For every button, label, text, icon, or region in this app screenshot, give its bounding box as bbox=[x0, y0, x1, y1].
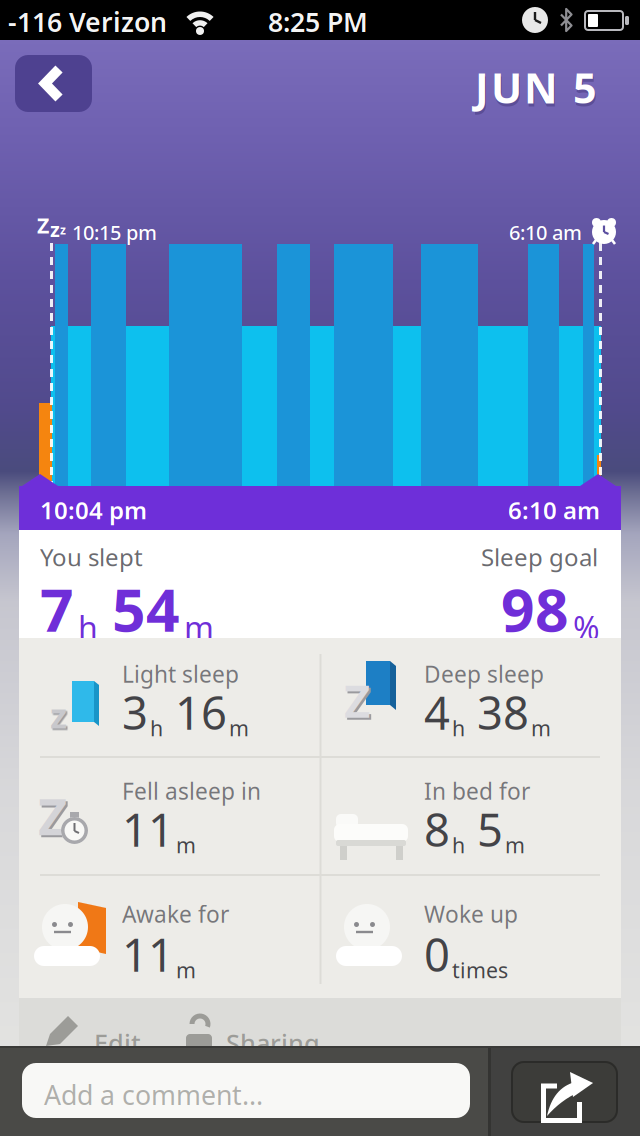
staticText: 16 bbox=[175, 682, 227, 742]
staticText: -116 Verizon bbox=[8, 4, 167, 39]
staticText: h bbox=[78, 606, 98, 649]
staticText: 3 bbox=[122, 682, 148, 742]
staticText: 98 bbox=[501, 570, 569, 648]
staticText: m bbox=[505, 831, 525, 859]
staticText: m bbox=[176, 956, 196, 984]
staticText: % bbox=[573, 606, 600, 649]
staticText: Z bbox=[344, 670, 370, 730]
staticText: 11 bbox=[122, 799, 174, 859]
staticText: Awake for bbox=[122, 899, 229, 929]
staticText: m bbox=[176, 831, 196, 859]
staticText: In bed for bbox=[424, 776, 530, 806]
staticText: times bbox=[452, 956, 508, 984]
staticText: 38 bbox=[477, 682, 529, 742]
staticText: Light sleep bbox=[122, 659, 239, 689]
staticText: 0 bbox=[424, 924, 450, 984]
staticText: Sleep goal bbox=[481, 541, 598, 573]
staticText: z bbox=[50, 692, 67, 738]
staticText: 5 bbox=[477, 799, 503, 859]
button[interactable]: Edit bbox=[38, 1012, 141, 1060]
staticText: 8:25 PM bbox=[268, 4, 368, 39]
staticText: h bbox=[150, 714, 163, 742]
staticText: m bbox=[184, 606, 214, 649]
staticText: 6:10 am bbox=[508, 494, 600, 526]
staticText: z bbox=[60, 222, 66, 238]
staticText: 54 bbox=[112, 570, 180, 648]
staticText: Z bbox=[37, 211, 49, 239]
staticText: z bbox=[50, 216, 60, 243]
staticText: Woke up bbox=[424, 899, 518, 929]
staticText: Fell asleep in bbox=[122, 776, 261, 806]
button[interactable]: Back bbox=[15, 55, 92, 112]
staticText: 10:04 pm bbox=[40, 494, 147, 526]
staticText: Add a comment... bbox=[44, 1077, 263, 1112]
staticText: 11 bbox=[122, 924, 174, 984]
staticText: JUN 5 bbox=[475, 60, 597, 115]
button[interactable]: Share bbox=[511, 1061, 618, 1123]
staticText: m bbox=[229, 714, 249, 742]
button[interactable]: Add a comment... bbox=[22, 1063, 470, 1118]
staticText: You slept bbox=[40, 541, 143, 573]
staticText: 7 bbox=[40, 570, 74, 648]
staticText: Sharing bbox=[226, 1026, 320, 1060]
staticText: 10:15 pm bbox=[72, 219, 157, 246]
staticText: 8 bbox=[424, 799, 450, 859]
staticText: h bbox=[452, 714, 465, 742]
button[interactable]: Sharing bbox=[184, 1012, 320, 1060]
staticText: 4 bbox=[424, 682, 450, 742]
staticText: Edit bbox=[94, 1026, 141, 1060]
staticText: Z bbox=[38, 782, 67, 849]
staticText: 6:10 am bbox=[509, 219, 582, 246]
staticText: Deep sleep bbox=[424, 659, 544, 689]
staticText: m bbox=[531, 714, 551, 742]
staticText: h bbox=[452, 831, 465, 859]
